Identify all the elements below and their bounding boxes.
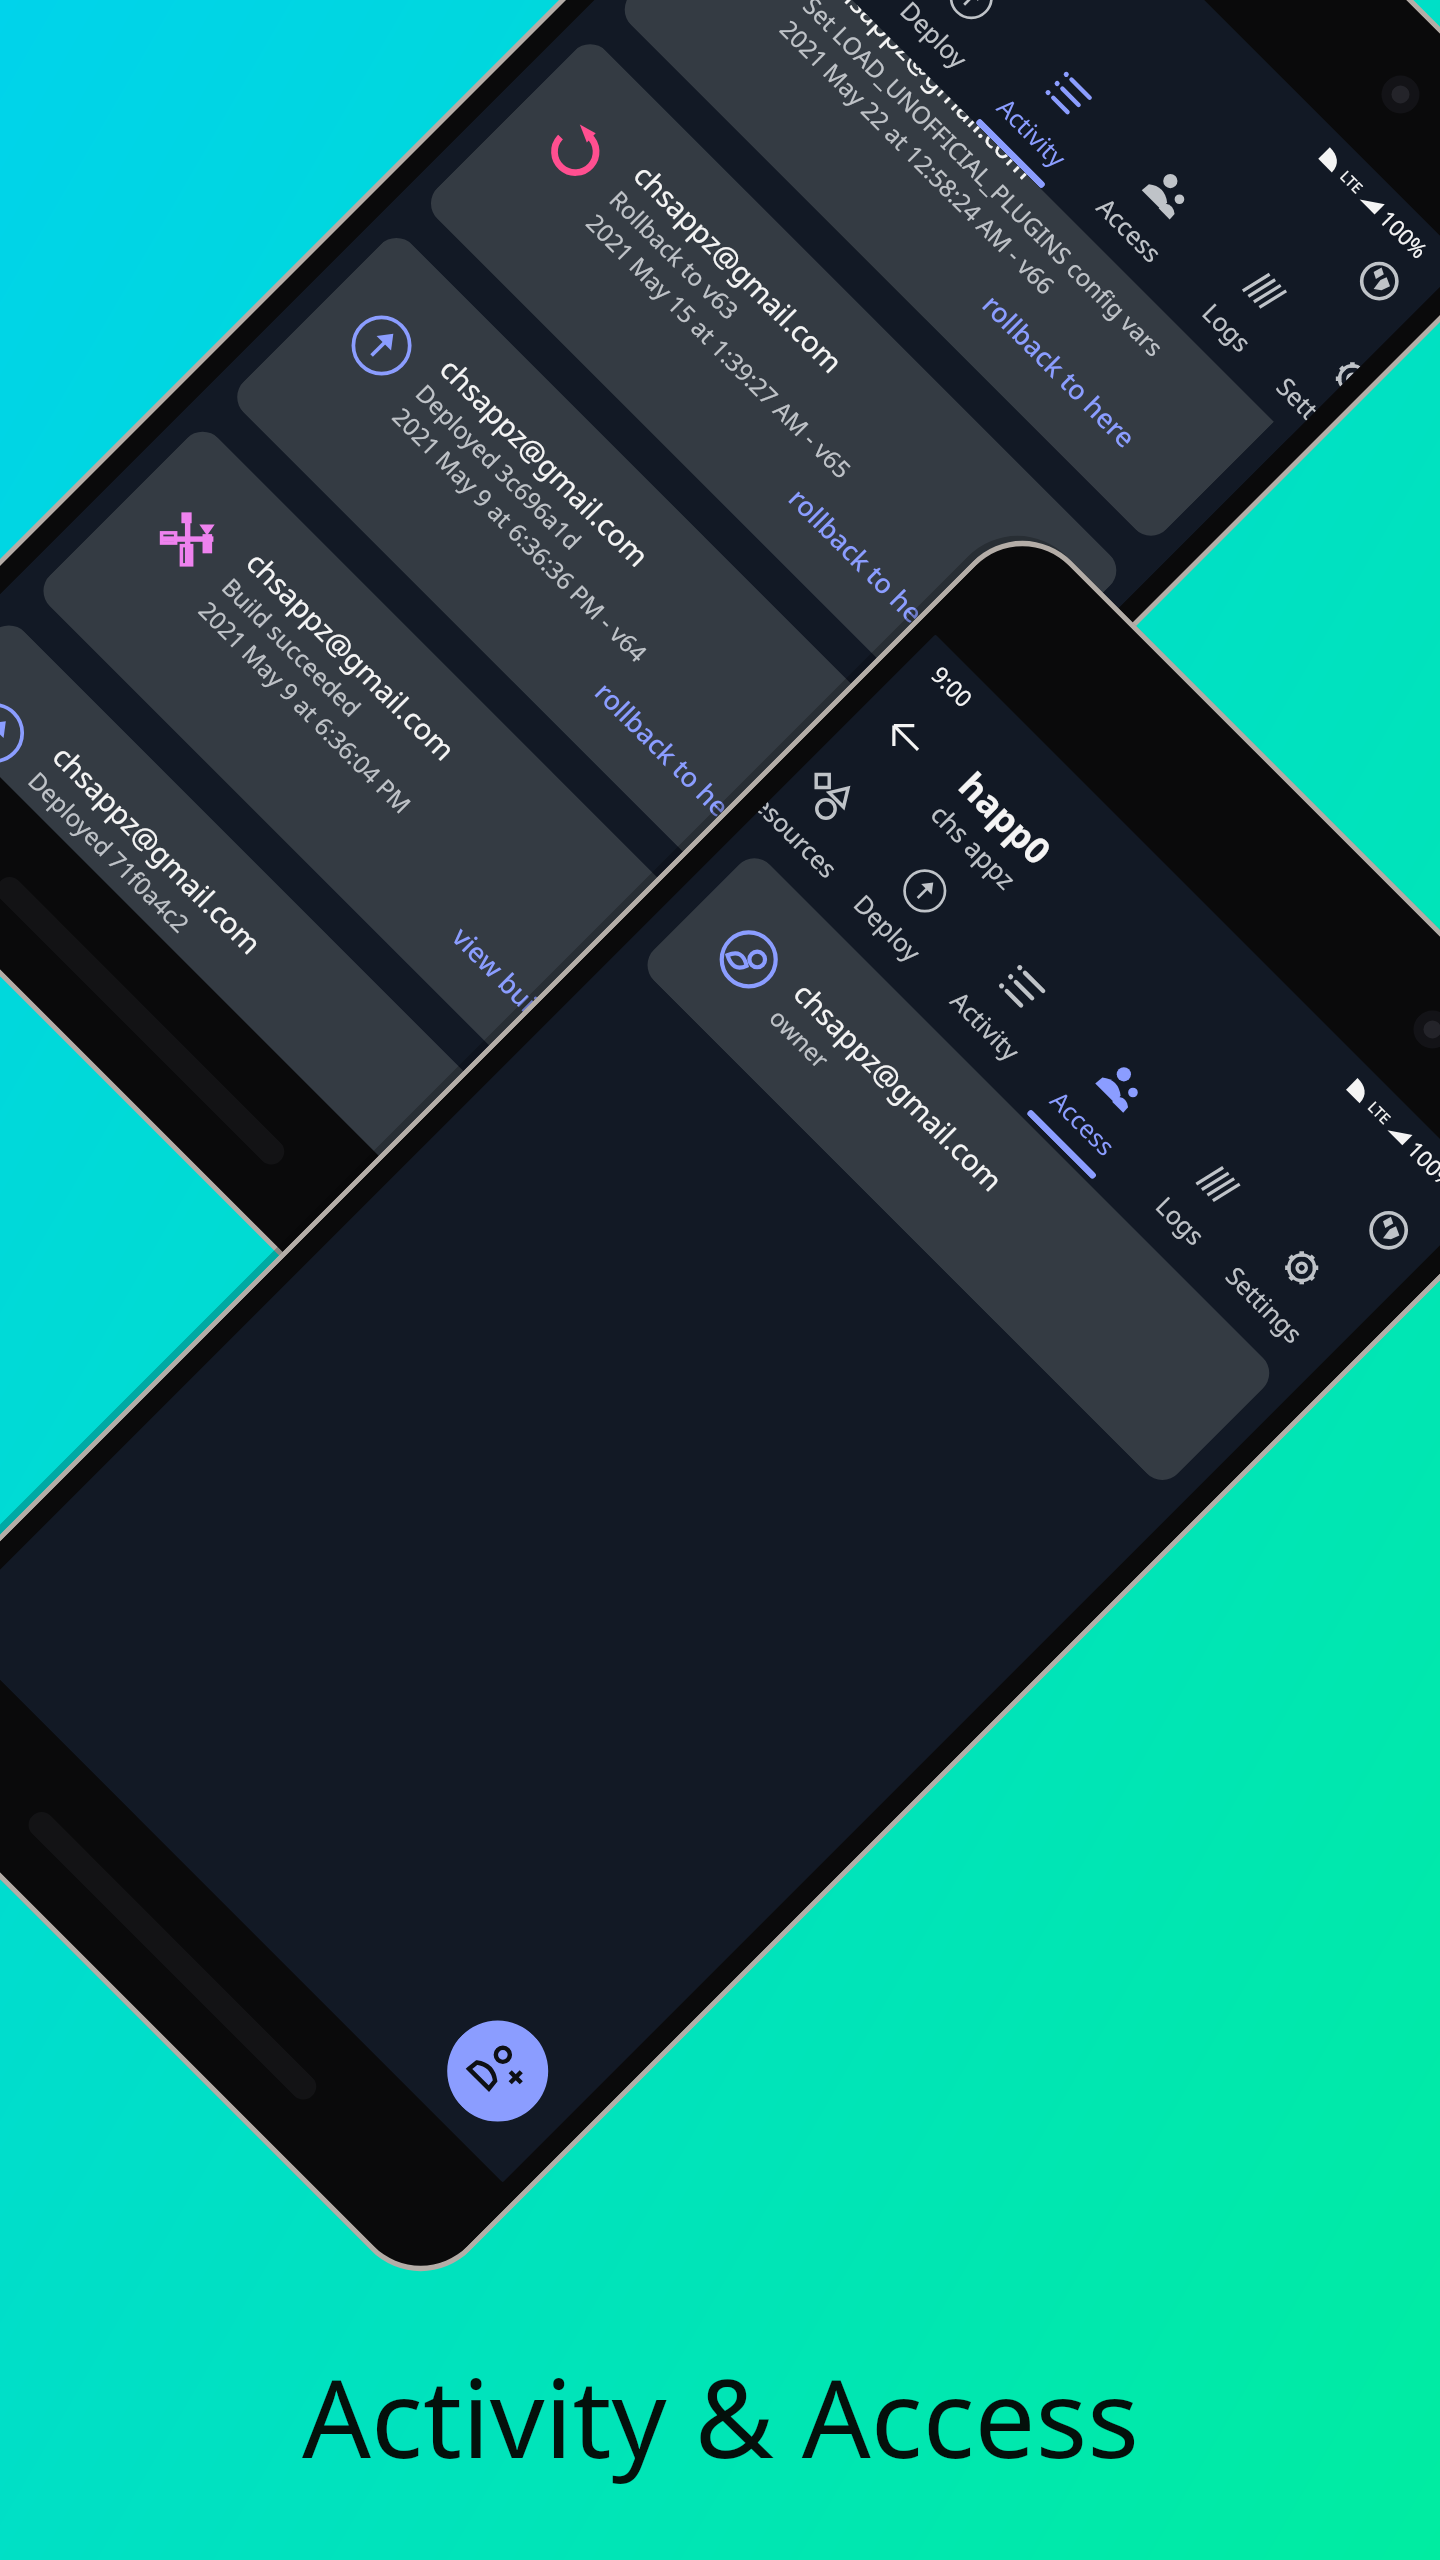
staticText: Access — [1090, 190, 1170, 270]
staticText: 2021 May 8 at 10:12:51 PM - v63 — [16, 787, 277, 1048]
button[interactable]: Settings — [1205, 1212, 1357, 1363]
button[interactable]: Deploy — [815, 822, 994, 1000]
staticText: 2021 May 15 at 1:39:27 AM - v65 — [579, 206, 859, 485]
button[interactable]: Activity — [913, 919, 1092, 1098]
staticText: Deploy — [893, 0, 975, 75]
staticText: rollback to here — [781, 480, 951, 649]
staticText: Activity — [944, 983, 1028, 1068]
staticText: 2021 May 9 at 6:36:36 PM - v64 — [386, 400, 655, 669]
button[interactable]: Access — [1010, 1017, 1189, 1196]
staticText: 2021 May 22 at 12:58:24 AM - v66 — [773, 12, 1062, 302]
staticText: 100% — [1374, 203, 1435, 265]
button[interactable]: rollback to here — [971, 282, 1177, 488]
button[interactable]: Logs — [1154, 221, 1333, 400]
button[interactable]: view build — [440, 914, 596, 1070]
staticText: Set LOAD_UNOFFICIAL_PLUGINS config vars — [797, 0, 1171, 363]
staticText: Activity — [990, 90, 1074, 174]
button[interactable]: Back — [863, 695, 948, 780]
staticText: Deploy — [847, 887, 929, 969]
button[interactable]: chsappz@gmail.com — [0, 616, 544, 1236]
staticText: Logs — [1195, 295, 1259, 359]
staticText: happ0 — [949, 761, 1063, 875]
button[interactable]: Settings — [1252, 319, 1371, 437]
staticText: chsappz@gmail.com — [239, 543, 464, 768]
button[interactable]: Access — [1057, 123, 1236, 302]
button[interactable]: chsappz@gmail.com — [616, 0, 1319, 545]
staticText: chsappz@gmail.com — [626, 155, 852, 381]
button[interactable]: Deploy — [862, 0, 1041, 107]
button[interactable]: chsappz@gmail.com — [422, 35, 1125, 739]
button[interactable]: Resources — [741, 747, 896, 903]
staticText: Access — [1044, 1083, 1123, 1163]
staticText: Settings — [1270, 369, 1326, 425]
staticText: chsappz@gmail.com — [786, 974, 1012, 1199]
button[interactable]: chsappz@gmail.com — [34, 423, 738, 1126]
staticText: rollback to here — [587, 674, 757, 843]
staticText: Settings — [1219, 1259, 1311, 1350]
staticText: 100% — [1401, 1134, 1440, 1196]
button[interactable]: Open in browser — [1335, 237, 1423, 325]
button[interactable]: Add collaborator — [426, 2000, 569, 2142]
staticText: chs appz — [924, 796, 1024, 896]
staticText: Rollback to v63 — [603, 183, 746, 326]
button[interactable]: Logs — [1108, 1114, 1287, 1293]
staticText: Activity & Access — [302, 2343, 1139, 2490]
staticText: Deployed 3c696a1d — [409, 377, 589, 557]
staticText: view build — [444, 918, 563, 1037]
staticText: rollback to here — [975, 286, 1144, 456]
button[interactable]: rollback to here — [583, 669, 790, 876]
button[interactable]: Activity — [959, 26, 1138, 205]
staticText: Logs — [1149, 1189, 1212, 1252]
staticText: chsappz@gmail.com — [820, 0, 1046, 187]
staticText: owner — [763, 1001, 837, 1075]
button[interactable]: rollback to here — [777, 476, 983, 682]
staticText: LTE — [1364, 1097, 1396, 1128]
button[interactable]: chsappz@gmail.com — [638, 849, 1278, 1489]
staticText: Deployed 71f0a4c2 — [22, 764, 197, 939]
staticText: LTE — [1336, 166, 1368, 198]
button[interactable]: Resources — [764, 0, 943, 10]
staticText: 9:00 — [925, 659, 980, 713]
button[interactable]: chsappz@gmail.com — [228, 229, 932, 932]
staticText: chsappz@gmail.com — [45, 736, 271, 962]
button[interactable]: Open in browser — [1345, 1186, 1432, 1274]
staticText: Resources — [753, 793, 846, 885]
staticText: 2021 May 9 at 6:36:04 PM — [192, 594, 419, 821]
staticText: chsappz@gmail.com — [432, 349, 658, 575]
staticText: Build succeeded — [215, 570, 369, 724]
